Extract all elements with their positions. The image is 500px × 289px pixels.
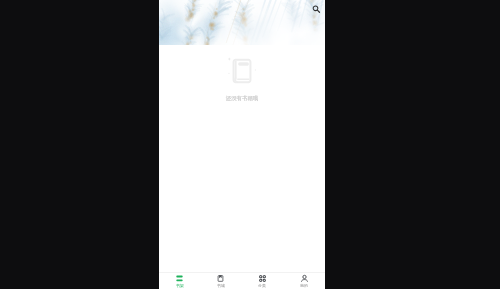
staticText: 我的 bbox=[300, 283, 308, 288]
button[interactable]: 书城 bbox=[200, 273, 241, 289]
button[interactable]: Search bbox=[309, 2, 322, 15]
button[interactable]: 分类 bbox=[241, 273, 283, 289]
button[interactable]: 书架 bbox=[159, 273, 200, 289]
staticText: 书架 bbox=[176, 283, 184, 288]
staticText: 分类 bbox=[258, 283, 266, 288]
button[interactable]: 我的 bbox=[283, 273, 325, 289]
staticText: 还没有书籍哦 bbox=[159, 95, 325, 102]
staticText: 书城 bbox=[217, 283, 225, 288]
